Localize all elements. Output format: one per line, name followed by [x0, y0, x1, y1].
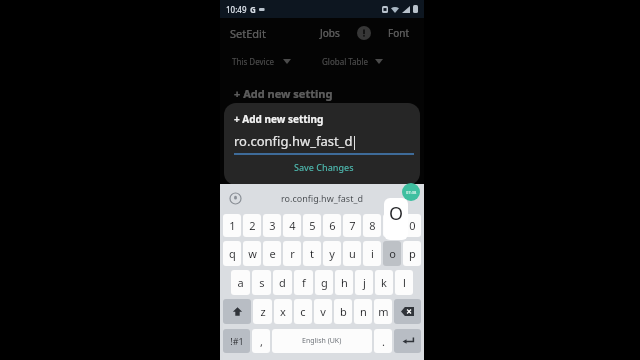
staticText: m [378, 304, 389, 319]
staticText: w [248, 246, 257, 261]
button[interactable]: 1 [223, 214, 241, 237]
button[interactable]: p [403, 241, 421, 266]
button[interactable]: Voice typing [228, 191, 242, 205]
staticText: h [341, 275, 348, 290]
button[interactable]: h [335, 270, 353, 295]
staticText: k [381, 275, 387, 290]
button[interactable]: t [303, 241, 321, 266]
staticText: f [302, 275, 306, 290]
button[interactable]: Badge [402, 183, 420, 201]
button[interactable]: x [274, 299, 292, 324]
staticText: 07:38 [406, 190, 417, 195]
staticText: G [250, 4, 256, 15]
staticText: t [310, 246, 314, 261]
staticText: d [279, 275, 286, 290]
button[interactable]: 6 [323, 214, 341, 237]
button[interactable]: 3 [263, 214, 281, 237]
staticText: Font [388, 26, 410, 40]
button[interactable]: l [395, 270, 413, 295]
button[interactable]: Info [354, 23, 374, 43]
button[interactable]: s [252, 270, 271, 295]
staticText: y [329, 246, 335, 261]
staticText: z [260, 304, 266, 319]
staticText: u [349, 246, 356, 261]
staticText: b [340, 304, 347, 319]
staticText: SetEdit [230, 26, 266, 41]
button[interactable]: Backspace [394, 299, 421, 324]
button[interactable]: r [283, 241, 301, 266]
staticText: 0 [409, 218, 416, 233]
button[interactable]: 4 [283, 214, 301, 237]
button[interactable]: Save Changes [234, 161, 414, 173]
button[interactable]: Font [384, 22, 414, 44]
button[interactable]: v [314, 299, 332, 324]
button[interactable]: i [363, 241, 381, 266]
staticText: Jobs [320, 26, 340, 40]
button[interactable]: 7 [343, 214, 361, 237]
staticText: English (UK) [302, 336, 342, 346]
staticText: c [300, 304, 306, 319]
button[interactable]: o [383, 241, 401, 266]
button[interactable]: z [253, 299, 272, 324]
button[interactable]: j [355, 270, 373, 295]
button[interactable]: 8 [363, 214, 381, 237]
staticText: 3 [269, 218, 276, 233]
staticText: . [382, 334, 385, 349]
button[interactable]: a [231, 270, 250, 295]
staticText: O [389, 201, 404, 226]
staticText: v [320, 304, 326, 319]
button[interactable]: d [273, 270, 292, 295]
button[interactable]: Enter [394, 329, 421, 353]
button[interactable]: u [343, 241, 361, 266]
staticText: 7 [349, 218, 356, 233]
staticText: 4 [289, 218, 296, 233]
staticText: r [290, 246, 295, 261]
button[interactable]: English (UK) [272, 329, 372, 353]
staticText: 10:49 [226, 4, 247, 15]
staticText: 8 [369, 218, 376, 233]
staticText: 2 [249, 218, 256, 233]
staticText: x [280, 304, 286, 319]
button[interactable]: 5 [303, 214, 321, 237]
staticText: ro.config.hw_fast_d [234, 132, 353, 150]
staticText: g [321, 275, 328, 290]
button[interactable]: f [294, 270, 313, 295]
button[interactable]: , [252, 329, 270, 353]
button[interactable]: q [223, 241, 241, 266]
button[interactable]: + Add new setting [220, 82, 424, 105]
button[interactable]: 0 [403, 214, 421, 237]
button[interactable]: e [263, 241, 281, 266]
staticText: , [260, 334, 263, 349]
staticText: ro.config.hw_fast_d [281, 192, 363, 204]
staticText: 6 [329, 218, 336, 233]
staticText: Global Table [322, 56, 369, 67]
button[interactable]: w [243, 241, 261, 266]
staticText: p [409, 246, 416, 261]
staticText: s [259, 275, 265, 290]
staticText: o [389, 246, 396, 261]
button[interactable]: Jobs [316, 22, 344, 44]
staticText: l [403, 275, 406, 290]
button[interactable]: y [323, 241, 341, 266]
staticText: 1 [229, 218, 236, 233]
staticText: + Add new setting [234, 86, 333, 101]
button[interactable]: n [354, 299, 372, 324]
staticText: e [269, 246, 276, 261]
button[interactable]: Shift [223, 299, 251, 324]
button[interactable]: Global Table [322, 56, 412, 67]
button[interactable]: b [334, 299, 352, 324]
button[interactable]: !#1 [223, 329, 250, 353]
button[interactable]: c [294, 299, 312, 324]
staticText: !#1 [230, 335, 244, 347]
button[interactable]: 2 [243, 214, 261, 237]
staticText: n [360, 304, 367, 319]
staticText: a [237, 275, 244, 290]
button[interactable]: . [374, 329, 392, 353]
button[interactable]: This Device [232, 56, 322, 67]
button[interactable]: 9 [383, 214, 401, 237]
staticText: This Device [232, 56, 275, 67]
staticText: 9 [389, 218, 396, 233]
button[interactable]: m [374, 299, 392, 324]
button[interactable]: g [315, 270, 333, 295]
button[interactable]: k [375, 270, 393, 295]
